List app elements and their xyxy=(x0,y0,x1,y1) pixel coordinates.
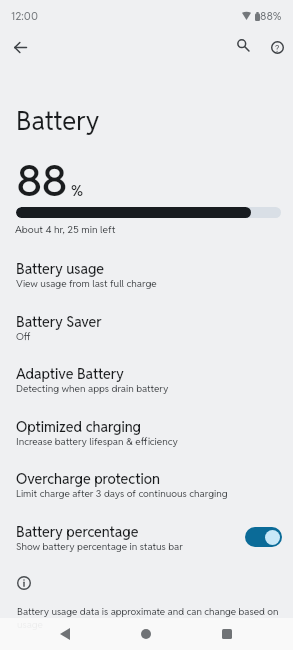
staticText: Limit charge after 3 days of continuous … xyxy=(16,487,228,500)
staticText: Increase battery lifespan & efficiency xyxy=(16,435,178,448)
staticText: 12:00 xyxy=(11,9,38,23)
button[interactable]: Battery usage xyxy=(0,250,293,296)
button[interactable]: Back xyxy=(4,31,36,63)
staticText: Battery Saver xyxy=(16,313,102,331)
button[interactable]: Recents xyxy=(213,620,241,648)
staticText: Battery percentage xyxy=(16,523,139,541)
staticText: Detecting when apps drain battery xyxy=(16,382,169,395)
staticText: Show battery percentage in status bar xyxy=(16,540,183,553)
staticText: Overcharge protection xyxy=(16,470,160,488)
staticText: 88 xyxy=(16,152,67,209)
staticText: Battery xyxy=(16,104,100,137)
staticText: % xyxy=(71,181,84,200)
button[interactable]: Home xyxy=(132,620,160,648)
staticText: Battery usage xyxy=(16,260,105,278)
button[interactable]: Search xyxy=(227,30,257,60)
staticText: Off xyxy=(16,330,31,343)
button[interactable]: Adaptive Battery xyxy=(0,355,293,401)
button[interactable]: Help xyxy=(262,32,292,62)
button[interactable]: Battery Saver xyxy=(0,303,293,349)
button[interactable] xyxy=(245,527,282,547)
button[interactable]: Optimized charging xyxy=(0,408,293,454)
button[interactable]: Back xyxy=(51,620,79,648)
other: Info xyxy=(17,576,31,590)
staticText: 88% xyxy=(260,9,282,23)
staticText: About 4 hr, 25 min left xyxy=(15,223,116,236)
staticText: Optimized charging xyxy=(16,418,141,436)
staticText: Battery usage data is approximate and ca… xyxy=(17,605,283,631)
button[interactable]: Overcharge protection xyxy=(0,460,293,506)
staticText: ? xyxy=(275,42,280,54)
staticText: Adaptive Battery xyxy=(16,365,124,383)
staticText: View usage from last full charge xyxy=(16,277,157,290)
button[interactable]: Battery percentage xyxy=(0,513,293,559)
